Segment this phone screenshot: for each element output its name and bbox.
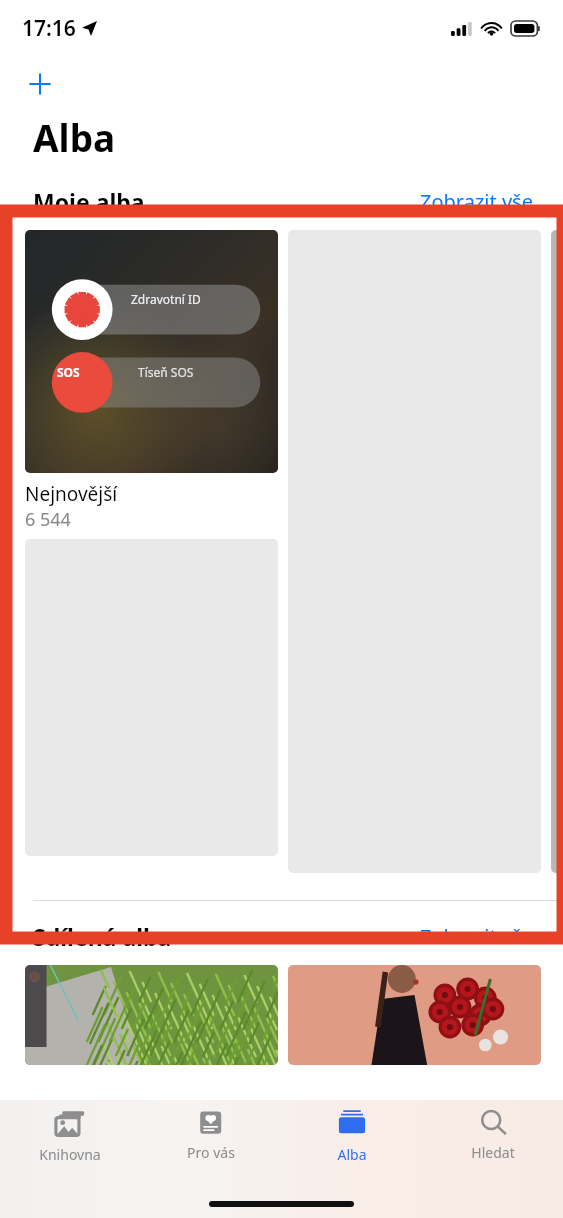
- staticText: Zobrazit vše: [420, 923, 533, 950]
- staticText: 6 544: [25, 507, 71, 532]
- staticText: Zobrazit vše: [420, 188, 533, 215]
- button[interactable]: Hledat: [422, 1100, 563, 1182]
- button[interactable]: Knihovna: [0, 1100, 140, 1182]
- staticText: Sdílená alba: [33, 921, 172, 952]
- staticText: SOS: [57, 364, 80, 380]
- button[interactable]: [288, 965, 541, 1065]
- button[interactable]: Zdravotní ID: [25, 230, 278, 473]
- staticText: Hledat: [471, 1143, 515, 1162]
- button[interactable]: Alba: [281, 1100, 422, 1182]
- button[interactable]: Add album: [18, 62, 62, 106]
- staticText: Pro vás: [187, 1143, 235, 1162]
- staticText: Alba: [33, 112, 116, 162]
- staticText: Tíseň SOS: [138, 364, 194, 380]
- staticText: 17:16: [22, 14, 76, 43]
- button[interactable]: Pro vás: [140, 1100, 281, 1182]
- staticText: Alba: [337, 1145, 367, 1164]
- staticText: Moje alba: [33, 186, 145, 217]
- staticText: Knihovna: [39, 1145, 101, 1164]
- button[interactable]: Zobrazit vše: [420, 923, 563, 950]
- button[interactable]: Zobrazit vše: [420, 188, 563, 215]
- staticText: Zdravotní ID: [131, 291, 201, 307]
- button[interactable]: [25, 965, 278, 1065]
- staticText: Nejnovější: [25, 481, 118, 507]
